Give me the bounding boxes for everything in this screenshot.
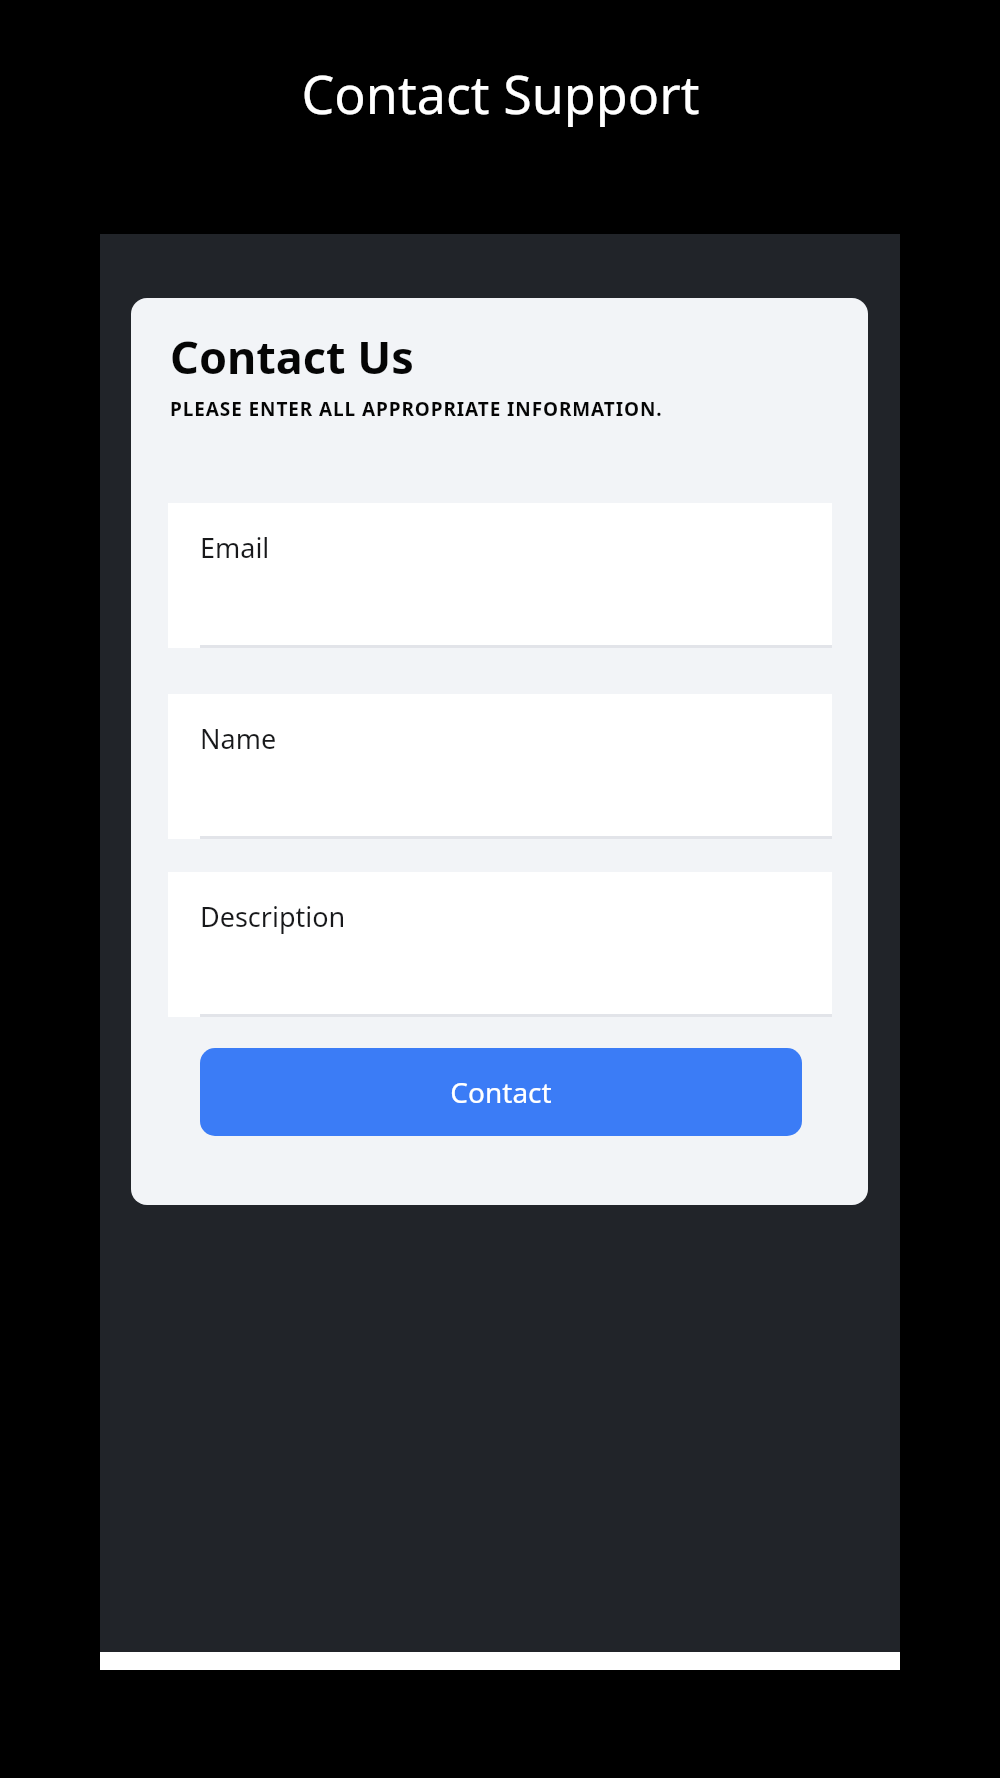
staticText: Contact	[450, 1073, 552, 1111]
staticText: Contact Support	[301, 58, 700, 129]
staticText: PLEASE ENTER ALL APPROPRIATE INFORMATION…	[170, 396, 663, 422]
staticText: Email	[200, 529, 270, 566]
button[interactable]: Name	[168, 694, 832, 839]
button[interactable]: Description	[168, 872, 832, 1017]
button[interactable]: Contact	[200, 1048, 802, 1136]
staticText: Description	[200, 898, 346, 935]
staticText: Contact Us	[170, 326, 414, 387]
button[interactable]: Email	[168, 503, 832, 648]
staticText: Name	[200, 720, 277, 757]
